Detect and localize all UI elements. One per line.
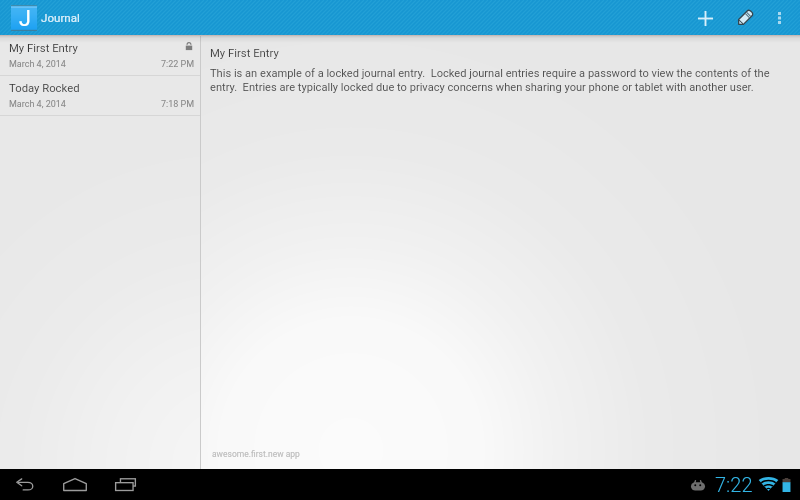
button[interactable]: My First Entry	[0, 36, 200, 76]
staticText: Journal	[41, 11, 80, 25]
staticText: 7:18 PM	[161, 99, 195, 110]
staticText: J	[19, 6, 31, 31]
staticText: This is an example of a locked journal e…	[210, 67, 793, 94]
staticText: My First Entry	[9, 42, 78, 55]
button[interactable]: Today Rocked	[0, 76, 200, 116]
button[interactable]: Home	[58, 469, 92, 500]
staticText: 7:22	[715, 473, 753, 496]
staticText: awesome.first.new app	[212, 449, 300, 459]
button[interactable]: Add entry	[688, 1, 722, 35]
staticText: March 4, 2014	[9, 59, 66, 70]
button[interactable]: Back	[8, 469, 42, 500]
button[interactable]: Edit entry	[728, 1, 762, 35]
button[interactable]: More options	[766, 5, 792, 31]
staticText: March 4, 2014	[9, 99, 66, 110]
staticText: My First Entry	[210, 47, 279, 60]
staticText: Today Rocked	[9, 82, 80, 95]
button[interactable]: Recent apps	[108, 469, 142, 500]
staticText: 7:22 PM	[161, 59, 195, 70]
